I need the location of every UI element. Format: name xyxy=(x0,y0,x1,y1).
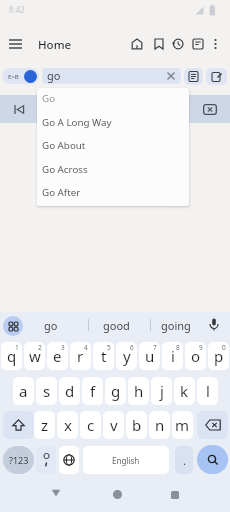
staticText: 6 xyxy=(130,343,134,352)
button[interactable]: Go Across xyxy=(37,159,189,180)
button[interactable]: Go A Long Way xyxy=(37,112,189,133)
staticText: go xyxy=(47,68,61,83)
staticText: d xyxy=(65,381,75,401)
button[interactable] xyxy=(208,318,220,333)
button[interactable]: English xyxy=(83,446,169,474)
button[interactable]: o xyxy=(185,342,206,370)
button[interactable]: k xyxy=(174,377,195,405)
button[interactable]: r xyxy=(70,342,91,370)
button[interactable] xyxy=(36,446,56,474)
button[interactable]: go xyxy=(30,313,72,338)
button[interactable] xyxy=(212,38,219,50)
staticText: 4 xyxy=(84,343,88,352)
staticText: 9 xyxy=(199,343,203,352)
button[interactable]: d xyxy=(59,377,80,405)
staticText: 2 xyxy=(38,343,42,352)
button[interactable] xyxy=(9,39,23,49)
staticText: Go xyxy=(42,92,56,105)
button[interactable]: v xyxy=(103,411,124,439)
staticText: l xyxy=(206,381,210,401)
staticText: x xyxy=(64,415,72,435)
staticText: s xyxy=(43,381,51,401)
staticText: 8 xyxy=(176,343,180,352)
staticText: ?123 xyxy=(9,454,29,466)
staticText: good xyxy=(103,318,130,333)
button[interactable]: Go After xyxy=(37,182,189,203)
staticText: t xyxy=(101,346,107,366)
button[interactable]: i xyxy=(162,342,183,370)
button[interactable] xyxy=(172,38,184,50)
button[interactable]: p xyxy=(208,342,229,370)
staticText: b xyxy=(132,415,142,435)
button[interactable]: n xyxy=(149,411,170,439)
button[interactable]: m xyxy=(172,411,193,439)
staticText: 7 xyxy=(153,343,157,352)
button[interactable]: E>B xyxy=(2,68,39,84)
staticText: e xyxy=(53,346,62,366)
button[interactable] xyxy=(197,445,228,474)
staticText: r xyxy=(77,346,84,366)
button[interactable] xyxy=(203,104,217,115)
button[interactable] xyxy=(206,68,227,85)
staticText: going xyxy=(161,318,191,333)
button[interactable]: s xyxy=(36,377,57,405)
button[interactable]: b xyxy=(126,411,147,439)
staticText: Go After xyxy=(42,186,81,199)
button[interactable]: t xyxy=(93,342,114,370)
staticText: o xyxy=(191,346,201,366)
staticText: go xyxy=(44,318,58,333)
staticText: 1 xyxy=(15,343,19,352)
staticText: u xyxy=(145,346,155,366)
button[interactable] xyxy=(113,490,122,499)
button[interactable]: go xyxy=(42,68,181,84)
button[interactable]: y xyxy=(116,342,137,370)
button[interactable]: g xyxy=(105,377,126,405)
button[interactable]: Go About xyxy=(37,135,189,156)
staticText: f xyxy=(90,381,96,401)
staticText: i xyxy=(171,346,175,366)
button[interactable] xyxy=(154,38,164,50)
button[interactable] xyxy=(131,38,143,50)
button[interactable] xyxy=(197,411,228,439)
staticText: Go Across xyxy=(42,163,88,176)
staticText: n xyxy=(155,415,165,435)
staticText: 0 xyxy=(222,343,226,352)
button[interactable]: Go xyxy=(37,88,189,109)
button[interactable]: . xyxy=(175,446,193,474)
button[interactable] xyxy=(51,489,61,498)
button[interactable] xyxy=(3,411,34,439)
button[interactable] xyxy=(192,38,204,50)
button[interactable] xyxy=(3,316,23,336)
staticText: h xyxy=(134,381,144,401)
staticText: Go A Long Way xyxy=(42,116,112,129)
staticText: m xyxy=(175,415,190,435)
button[interactable]: a xyxy=(13,377,34,405)
button[interactable]: x xyxy=(57,411,78,439)
button[interactable]: c xyxy=(80,411,101,439)
button[interactable]: w xyxy=(24,342,45,370)
staticText: j xyxy=(160,381,164,401)
button[interactable]: q xyxy=(1,342,22,370)
staticText: Go About xyxy=(42,139,86,152)
button[interactable] xyxy=(184,68,203,85)
button[interactable]: j xyxy=(151,377,172,405)
button[interactable]: h xyxy=(128,377,149,405)
button[interactable]: going xyxy=(154,313,198,338)
staticText: a xyxy=(19,381,28,401)
staticText: z xyxy=(41,415,49,435)
button[interactable]: ?123 xyxy=(3,446,34,474)
staticText: . xyxy=(183,453,186,468)
staticText: p xyxy=(214,346,224,366)
button[interactable]: z xyxy=(34,411,55,439)
staticText: 8:42 xyxy=(9,4,25,15)
button[interactable] xyxy=(171,491,179,499)
button[interactable]: l xyxy=(197,377,218,405)
button[interactable] xyxy=(14,105,25,114)
staticText: English xyxy=(112,455,140,466)
button[interactable] xyxy=(59,446,79,474)
button[interactable]: e xyxy=(47,342,68,370)
button[interactable]: good xyxy=(94,313,138,338)
button[interactable]: u xyxy=(139,342,160,370)
staticText: v xyxy=(110,415,118,435)
button[interactable]: f xyxy=(82,377,103,405)
